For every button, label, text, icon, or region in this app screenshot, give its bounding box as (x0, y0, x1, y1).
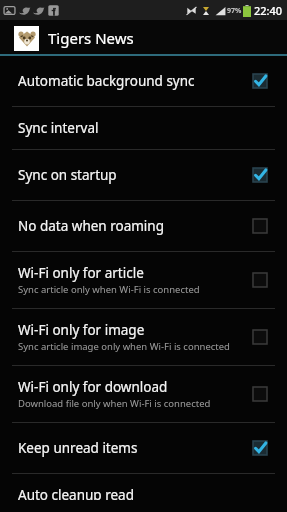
button[interactable]: Auto cleanup read (0, 474, 287, 512)
button[interactable]: Automatic background sync (0, 56, 287, 106)
staticText: Auto cleanup read (18, 486, 134, 500)
staticText: Sync article only when Wi-Fi is connecte… (18, 283, 200, 296)
button[interactable]: Sync interval (0, 107, 287, 149)
button[interactable]: No data when roaming (0, 201, 287, 251)
button[interactable]: Checked (247, 68, 273, 94)
staticText: Sync interval (18, 119, 99, 137)
staticText: Sync article image only when Wi-Fi is co… (18, 340, 230, 353)
button[interactable]: Keep unread items (0, 423, 287, 473)
staticText: No data when roaming (18, 217, 164, 235)
button[interactable]: Unchecked (247, 213, 273, 239)
button[interactable]: Wi-Fi only for download (0, 366, 287, 422)
button[interactable]: Wi-Fi only for article (0, 252, 287, 308)
button[interactable]: Sync on startup (0, 150, 287, 200)
staticText: Download file only when Wi-Fi is connect… (18, 397, 211, 410)
staticText: 22:40 (254, 3, 283, 18)
staticText: Tigers News (48, 28, 134, 48)
button[interactable]: Unchecked (247, 381, 273, 407)
staticText: Wi-Fi only for article (18, 264, 144, 282)
staticText: Automatic background sync (18, 72, 195, 90)
button[interactable]: Unchecked (247, 324, 273, 350)
staticText: Wi-Fi only for image (18, 321, 145, 339)
button[interactable]: Unchecked (247, 267, 273, 293)
staticText: Sync on startup (18, 166, 117, 184)
button[interactable]: Checked (247, 162, 273, 188)
staticText: Keep unread items (18, 439, 138, 457)
button[interactable]: Wi-Fi only for image (0, 309, 287, 365)
staticText: 97% (227, 6, 242, 16)
staticText: Wi-Fi only for download (18, 378, 168, 396)
button[interactable]: Checked (247, 435, 273, 461)
